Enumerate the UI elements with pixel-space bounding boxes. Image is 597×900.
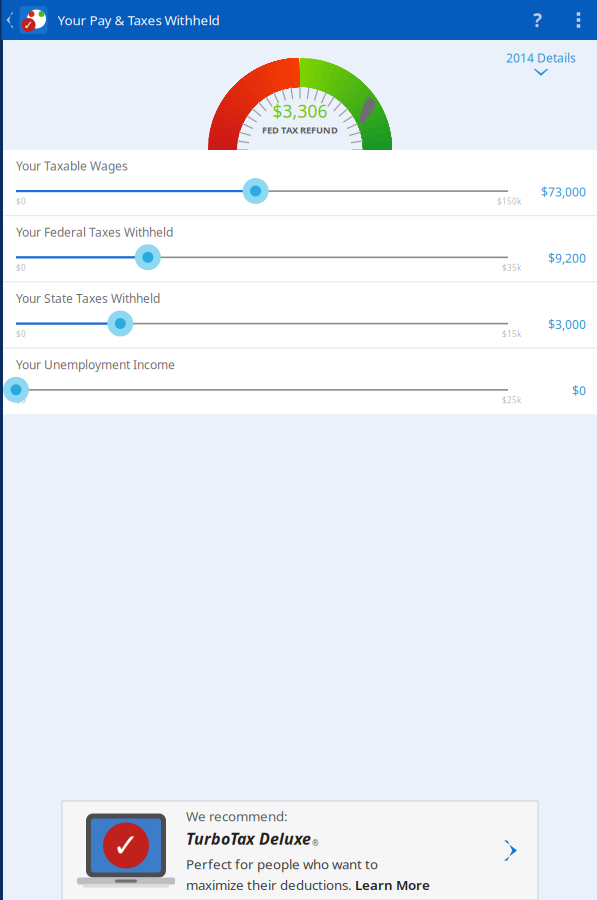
staticText: ✓ bbox=[23, 18, 33, 32]
button[interactable]: Your State Taxes Withheld bbox=[3, 282, 597, 348]
button[interactable]: TurboTax bbox=[16, 0, 50, 40]
staticText: $0 bbox=[16, 196, 26, 207]
staticText: $3,306 bbox=[272, 100, 327, 123]
staticText: $0 bbox=[16, 328, 26, 339]
staticText: ® bbox=[312, 838, 319, 848]
staticText: 2014 Details bbox=[506, 50, 576, 66]
staticText: Your Unemployment Income bbox=[16, 357, 175, 373]
button[interactable]: ✓ bbox=[62, 801, 538, 900]
staticText: We recommend: bbox=[186, 807, 288, 825]
staticText: Your State Taxes Withheld bbox=[16, 290, 160, 306]
staticText: $150k bbox=[497, 196, 521, 207]
staticText: ? bbox=[533, 8, 542, 32]
staticText: $3,000 bbox=[548, 316, 586, 332]
staticText: $15k bbox=[502, 328, 521, 339]
staticText: Your Taxable Wages bbox=[16, 158, 128, 174]
staticText: $9,200 bbox=[548, 250, 586, 266]
button[interactable]: Back bbox=[1, 0, 16, 40]
staticText: $73,000 bbox=[541, 184, 586, 200]
button[interactable]: Help bbox=[516, 0, 558, 40]
button[interactable]: Your Taxable Wages bbox=[3, 150, 597, 215]
button[interactable]: More options bbox=[558, 0, 597, 40]
staticText: FED TAX REFUND bbox=[262, 124, 338, 136]
staticText: maximize their deductions. bbox=[186, 876, 355, 894]
staticText: ✓ bbox=[112, 827, 139, 864]
button[interactable]: 2014 Details bbox=[506, 40, 597, 76]
staticText: TurboTax Deluxe bbox=[186, 828, 311, 849]
staticText: $25k bbox=[502, 395, 521, 405]
staticText: Learn More bbox=[355, 876, 430, 894]
staticText: $0 bbox=[16, 262, 26, 273]
button[interactable]: Your Unemployment Income bbox=[3, 349, 597, 414]
button[interactable]: Your Federal Taxes Withheld bbox=[3, 216, 597, 281]
staticText: $0 bbox=[16, 395, 26, 405]
staticText: $35k bbox=[502, 262, 521, 273]
staticText: $0 bbox=[572, 383, 586, 399]
staticText: Your Pay & Taxes Withheld bbox=[57, 11, 219, 29]
staticText: Perfect for people who want to bbox=[186, 855, 378, 873]
staticText: Your Federal Taxes Withheld bbox=[16, 224, 173, 240]
